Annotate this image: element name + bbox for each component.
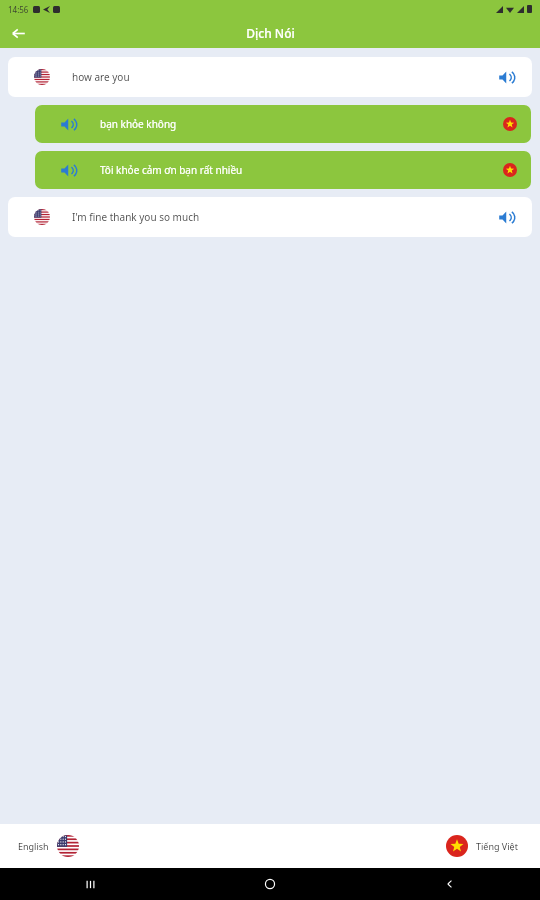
- button[interactable]: Play audio: [488, 60, 522, 94]
- staticText: how are you: [72, 70, 130, 84]
- button[interactable]: I'm fine thank you so much: [8, 197, 532, 237]
- staticText: Dịch Nói: [246, 25, 295, 41]
- button[interactable]: Back: [0, 18, 36, 48]
- staticText: bạn khỏe không: [100, 117, 177, 131]
- button[interactable]: Back: [360, 868, 540, 900]
- staticText: I'm fine thank you so much: [72, 210, 200, 224]
- staticText: 14:56: [8, 4, 29, 15]
- button[interactable]: Play audio: [35, 151, 531, 189]
- button[interactable]: Tiếng Việt: [446, 835, 518, 857]
- staticText: Tôi khỏe cảm ơn bạn rất nhiều: [100, 163, 243, 177]
- staticText: English: [18, 840, 49, 852]
- button[interactable]: Recent apps: [0, 868, 180, 900]
- button[interactable]: how are you: [8, 57, 532, 97]
- button[interactable]: Play audio: [35, 105, 531, 143]
- staticText: Tiếng Việt: [476, 840, 518, 852]
- button[interactable]: English: [18, 835, 79, 857]
- button[interactable]: Play audio: [488, 200, 522, 234]
- button[interactable]: Vietnamese: [496, 110, 524, 138]
- button[interactable]: Play audio: [55, 158, 79, 182]
- button[interactable]: Home: [180, 868, 360, 900]
- button[interactable]: Play audio: [55, 112, 79, 136]
- button[interactable]: Vietnamese: [496, 156, 524, 184]
